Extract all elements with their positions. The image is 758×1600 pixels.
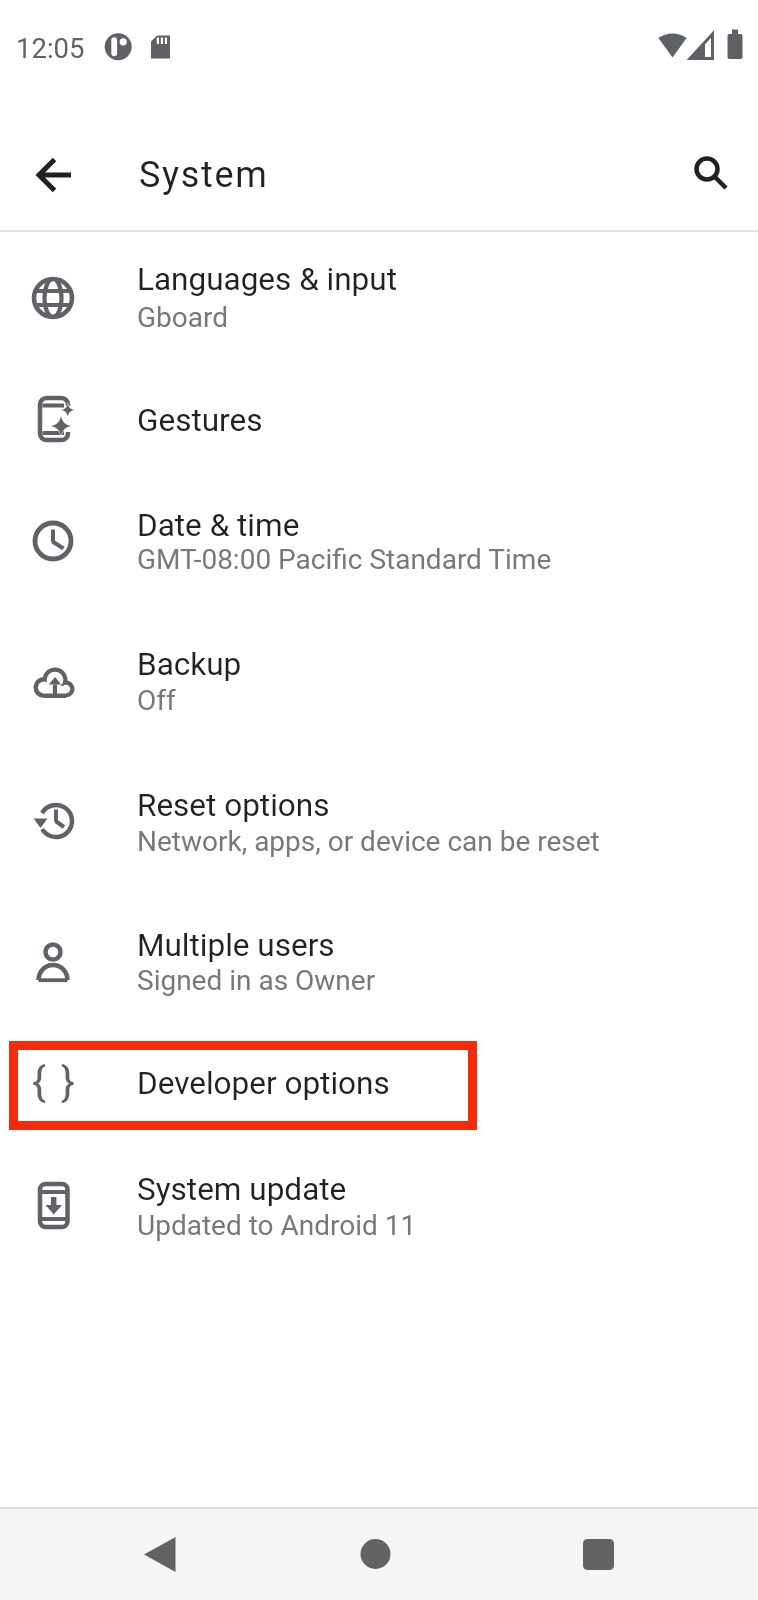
button[interactable]: Reset options xyxy=(0,753,758,893)
staticText: Gboard xyxy=(137,301,229,334)
button[interactable] xyxy=(548,1510,648,1598)
button[interactable]: Date & time xyxy=(0,472,758,613)
staticText: { xyxy=(32,1058,46,1106)
button[interactable]: Multiple users xyxy=(0,893,758,1033)
button[interactable]: Gestures xyxy=(0,370,758,472)
button[interactable]: Backup xyxy=(0,613,758,753)
button[interactable] xyxy=(110,1510,210,1598)
button[interactable]: System update xyxy=(0,1137,758,1277)
staticText: Backup xyxy=(137,646,242,683)
staticText: System update xyxy=(137,1171,347,1208)
staticText: Languages & input xyxy=(137,261,397,298)
staticText: } xyxy=(61,1058,75,1106)
button[interactable]: Languages & input xyxy=(0,232,758,370)
staticText: Gestures xyxy=(137,402,263,439)
staticText: 12:05 xyxy=(16,32,85,64)
staticText: System xyxy=(139,154,269,196)
button[interactable] xyxy=(20,140,90,210)
staticText: Updated to Android 11 xyxy=(137,1209,417,1242)
staticText: Network, apps, or device can be reset xyxy=(137,825,600,858)
staticText: Developer options xyxy=(137,1065,390,1102)
staticText: Signed in as Owner xyxy=(137,964,376,997)
button[interactable]: { xyxy=(0,1033,758,1137)
staticText: GMT-08:00 Pacific Standard Time xyxy=(137,543,552,576)
button[interactable] xyxy=(676,140,742,206)
staticText: Multiple users xyxy=(137,927,335,964)
staticText: Off xyxy=(137,684,176,717)
staticText: Reset options xyxy=(137,787,330,824)
staticText: Date & time xyxy=(137,507,300,544)
button[interactable] xyxy=(326,1510,426,1598)
